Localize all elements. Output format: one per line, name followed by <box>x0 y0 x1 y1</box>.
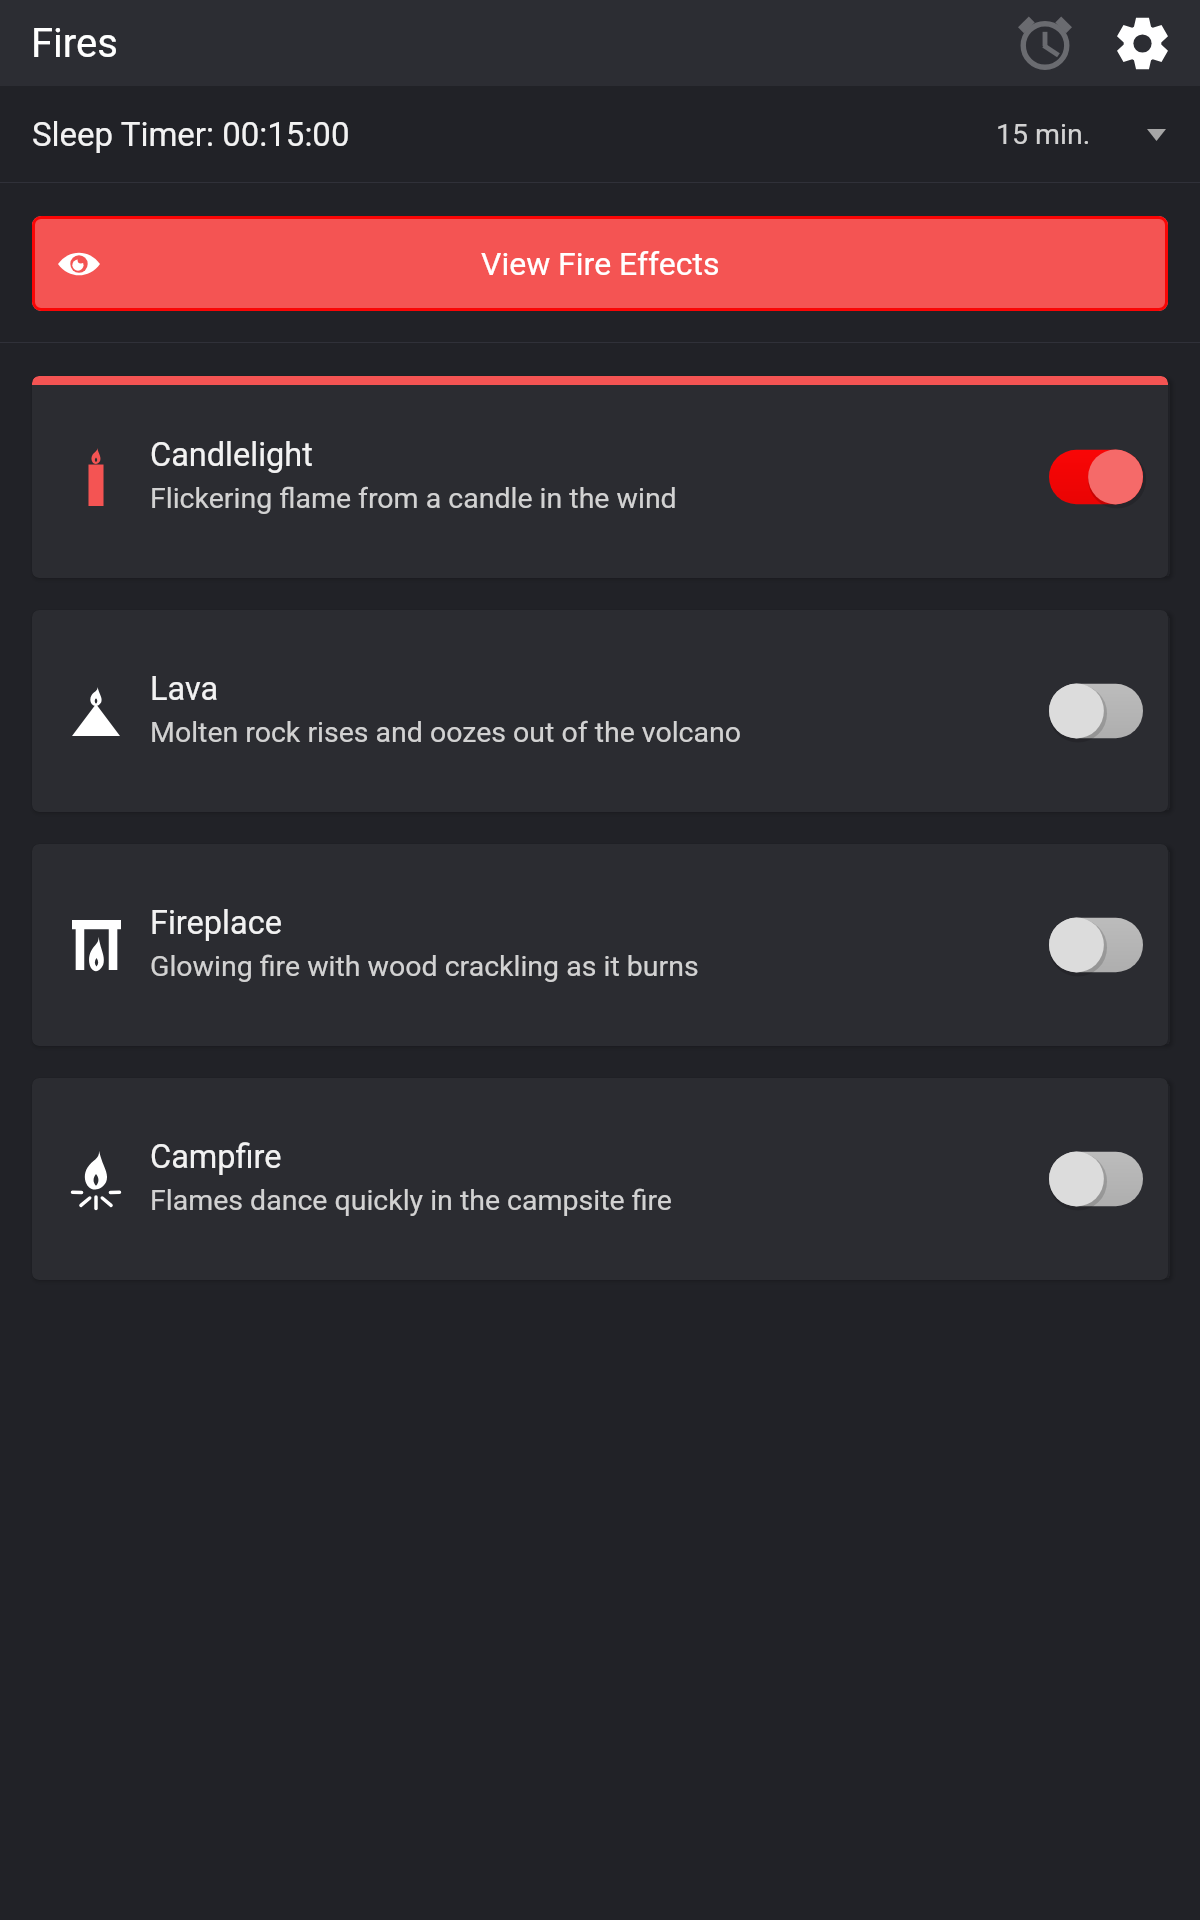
staticText: Flickering flame from a candle in the wi… <box>150 482 677 515</box>
staticText: Candlelight <box>150 436 313 474</box>
button[interactable]: Sleep Timer: 00:15:00 <box>0 86 1200 183</box>
button[interactable]: Candlelight <box>32 376 1168 578</box>
staticText: Lava <box>150 670 219 708</box>
button[interactable]: Settings <box>1101 2 1183 84</box>
button[interactable]: Sleep timer <box>1002 0 1088 86</box>
staticText: Glowing fire with wood crackling as it b… <box>150 950 699 983</box>
button[interactable]: Lava <box>32 610 1168 812</box>
staticText: Molten rock rises and oozes out of the v… <box>150 716 742 749</box>
staticText: Fireplace <box>150 904 282 942</box>
staticText: Campfire <box>150 1138 282 1176</box>
staticText: Sleep Timer: 00:15:00 <box>32 115 350 154</box>
staticText: Flames dance quickly in the campsite fir… <box>150 1184 672 1217</box>
button[interactable]: Toggle off <box>1041 1139 1151 1219</box>
button[interactable]: Campfire <box>32 1078 1168 1280</box>
button[interactable]: View Fire Effects <box>32 216 1168 311</box>
staticText: Fires <box>31 20 118 67</box>
staticText: View Fire Effects <box>481 245 720 283</box>
button[interactable]: Toggle off <box>1041 671 1151 751</box>
staticText: 15 min. <box>996 118 1091 151</box>
button[interactable]: Fireplace <box>32 844 1168 1046</box>
button[interactable]: Toggle off <box>1041 905 1151 985</box>
button[interactable]: Toggle on <box>1041 437 1151 517</box>
